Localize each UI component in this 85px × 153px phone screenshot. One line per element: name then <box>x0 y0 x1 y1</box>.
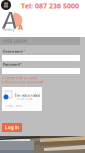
staticText: Request new password <box>5 79 43 84</box>
staticText: Growing <box>2 27 14 31</box>
button[interactable]: Create new account <box>2 75 37 80</box>
staticText: * <box>20 61 22 67</box>
staticText: * <box>23 48 25 54</box>
staticText: reCAPTCHA <box>16 97 32 101</box>
staticText: Log in <box>5 124 19 131</box>
staticText: Tel: 087 236 5000 <box>21 1 79 10</box>
button[interactable]: Menu <box>1 0 11 10</box>
staticText: Privacy - Terms <box>4 104 21 107</box>
staticText: A <box>18 22 23 32</box>
staticText: Username <box>2 48 22 54</box>
button[interactable]: Home <box>2 12 27 32</box>
button[interactable]: Log in <box>2 123 22 132</box>
button[interactable]: Tel: 087 236 5000 <box>20 0 80 11</box>
staticText: I'm not a robot <box>14 92 39 98</box>
staticText: Create new account <box>5 75 37 80</box>
staticText: Password <box>2 61 19 67</box>
staticText: USER LOGIN <box>2 38 26 44</box>
button[interactable]: Request new password <box>2 79 43 84</box>
